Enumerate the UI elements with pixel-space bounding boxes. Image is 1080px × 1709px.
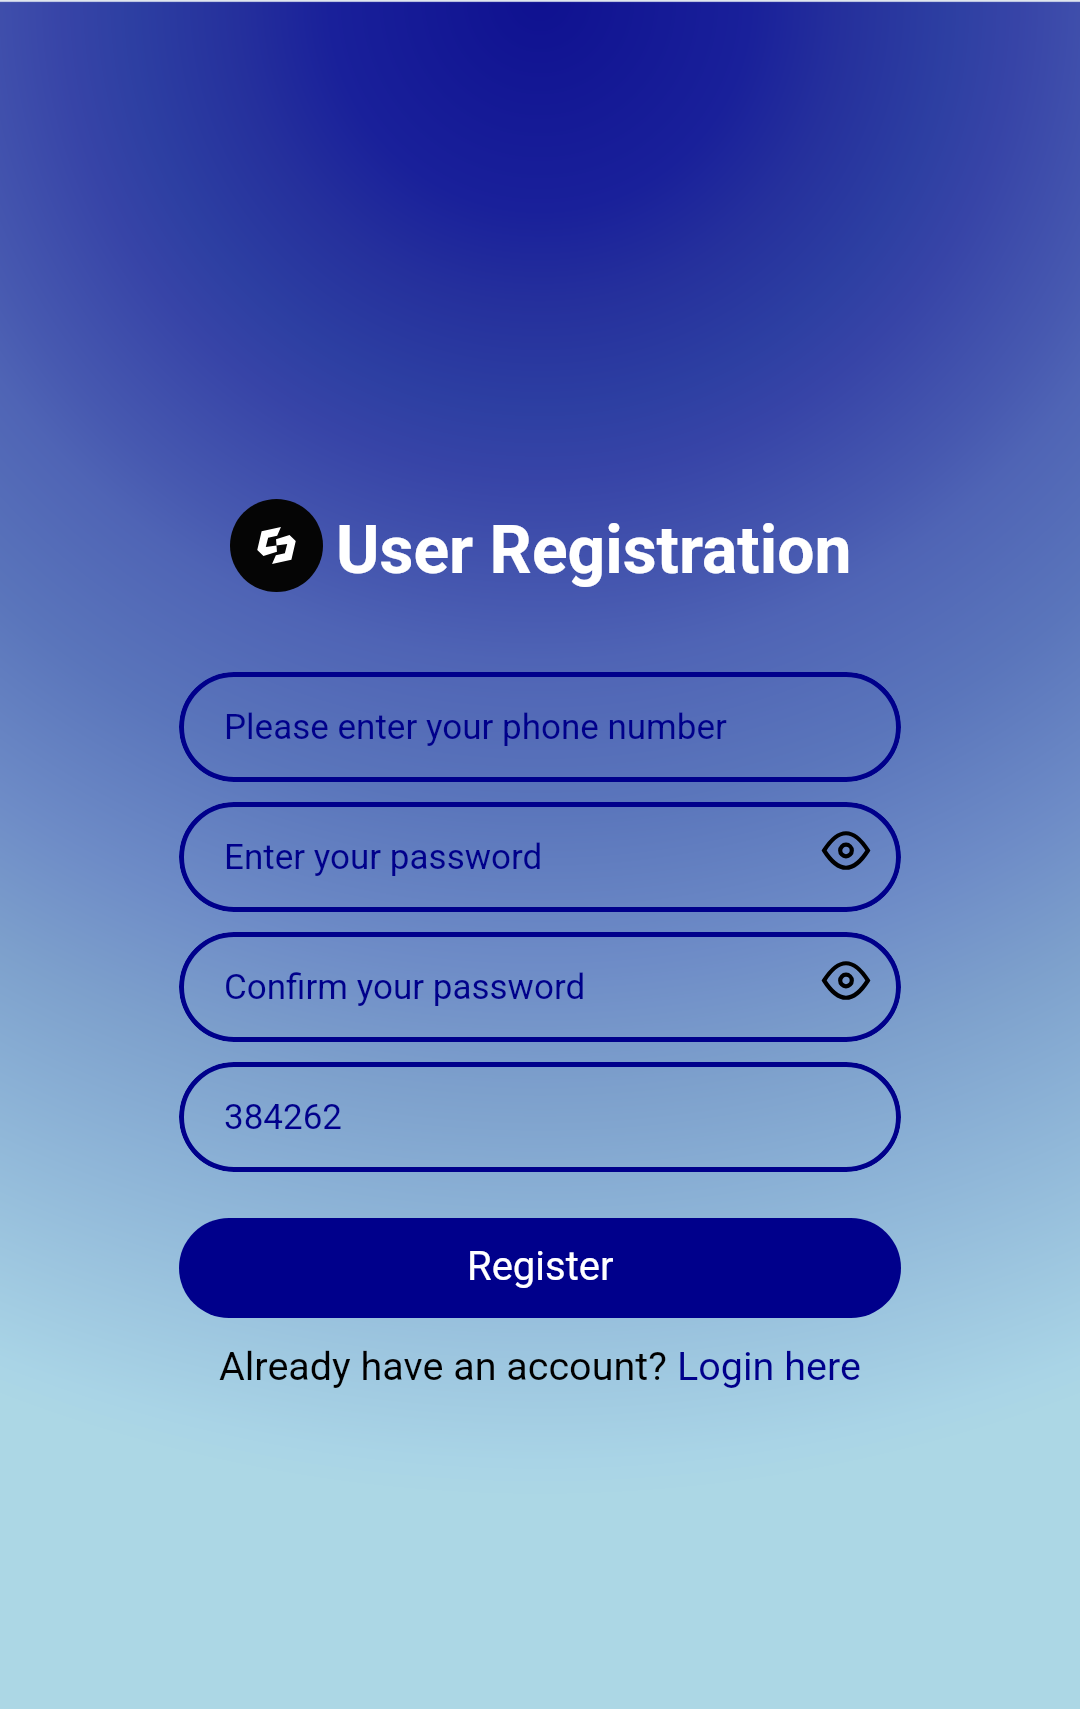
button[interactable]: Show password bbox=[810, 944, 882, 1016]
button[interactable]: Login here bbox=[677, 1343, 861, 1389]
button[interactable]: 384262 bbox=[179, 1062, 901, 1172]
staticText: Enter your password bbox=[224, 837, 543, 878]
staticText: 384262 bbox=[224, 1097, 343, 1138]
staticText: Already have an account? bbox=[219, 1343, 677, 1389]
button[interactable]: Confirm your password bbox=[179, 932, 901, 1042]
staticText: User Registration bbox=[336, 512, 852, 589]
staticText: Please enter your phone number bbox=[224, 707, 727, 748]
button[interactable]: Register bbox=[179, 1218, 901, 1318]
button[interactable]: Please enter your phone number bbox=[179, 672, 901, 782]
button[interactable]: Show password bbox=[810, 814, 882, 886]
button[interactable]: Enter your password bbox=[179, 802, 901, 912]
staticText: Register bbox=[467, 1243, 614, 1290]
staticText: Confirm your password bbox=[224, 967, 586, 1008]
